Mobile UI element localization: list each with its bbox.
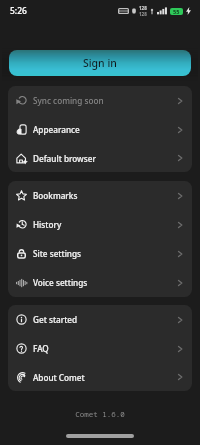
staticText: Voice settings bbox=[33, 277, 88, 288]
staticText: 128 bbox=[139, 11, 147, 17]
staticText: About Comet bbox=[33, 372, 85, 383]
button[interactable]: Get started bbox=[8, 305, 192, 334]
staticText: 128 bbox=[139, 5, 147, 11]
staticText: FAQ bbox=[33, 343, 49, 354]
staticText: 55 bbox=[173, 8, 180, 15]
button[interactable]: About Comet bbox=[8, 363, 192, 391]
staticText: Bookmarks bbox=[33, 190, 78, 201]
button[interactable]: FAQ bbox=[8, 334, 192, 363]
button[interactable]: Sync coming soon bbox=[8, 86, 192, 115]
button[interactable]: Default browser bbox=[8, 144, 192, 172]
button[interactable]: Appearance bbox=[8, 115, 192, 144]
staticText: Comet 1.6.0 bbox=[0, 409, 200, 419]
button[interactable]: Bookmarks bbox=[8, 181, 192, 210]
staticText: History bbox=[33, 219, 62, 230]
staticText: Get started bbox=[33, 314, 78, 325]
staticText: Default browser bbox=[33, 153, 96, 164]
staticText: Sign in bbox=[83, 56, 117, 70]
button[interactable]: Site settings bbox=[8, 239, 192, 268]
button[interactable]: History bbox=[8, 210, 192, 239]
button[interactable]: Voice settings bbox=[8, 268, 192, 297]
staticText: Sync coming soon bbox=[33, 95, 104, 106]
button[interactable]: Sign in bbox=[9, 50, 191, 76]
staticText: Appearance bbox=[33, 124, 80, 135]
staticText: Site settings bbox=[33, 248, 82, 259]
staticText: 5:26 bbox=[10, 5, 27, 17]
